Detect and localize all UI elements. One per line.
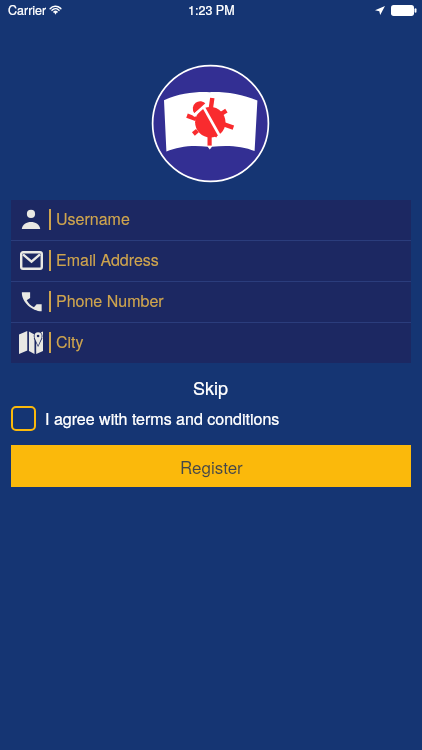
button[interactable]: Phone Number (11, 282, 411, 322)
staticText: Skip (193, 374, 229, 400)
button[interactable]: Email Address (11, 241, 411, 281)
staticText: 1:23 PM (188, 1, 235, 19)
button[interactable]: Register (11, 445, 411, 487)
button[interactable]: Username (11, 200, 411, 240)
staticText: I agree with terms and conditions (45, 407, 280, 430)
button[interactable]: City (11, 323, 411, 363)
button[interactable]: I agree with terms and conditions (11, 404, 280, 432)
staticText: Email Address (56, 248, 159, 271)
staticText: Username (56, 207, 130, 230)
staticText: Carrier (8, 1, 47, 19)
button[interactable]: Skip (0, 374, 422, 400)
staticText: Register (180, 454, 243, 478)
staticText: City (56, 330, 84, 353)
staticText: Phone Number (56, 289, 164, 312)
